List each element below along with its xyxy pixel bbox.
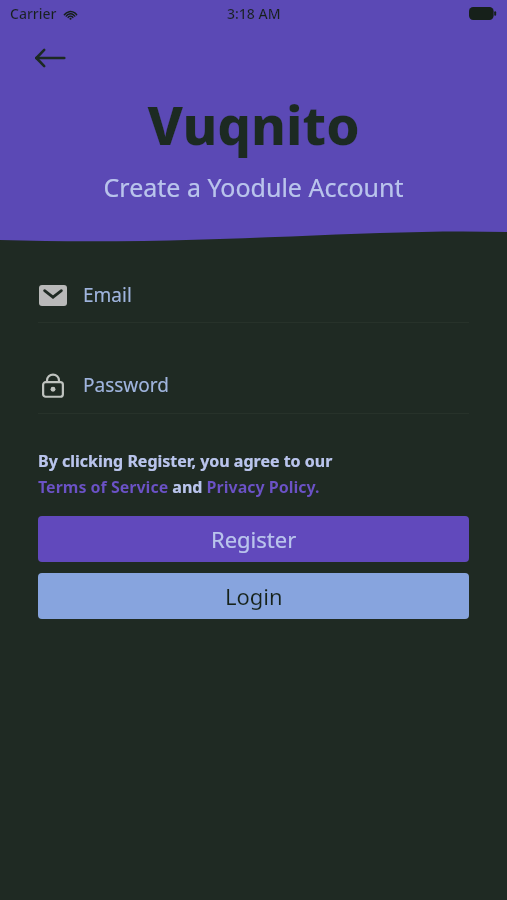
staticText: Login bbox=[225, 581, 283, 611]
staticText: Carrier bbox=[10, 4, 57, 23]
button[interactable]: Login bbox=[38, 573, 469, 619]
staticText: By clicking Register, you agree to our bbox=[38, 450, 333, 472]
button[interactable]: Back bbox=[24, 32, 76, 84]
button[interactable]: Password bbox=[38, 371, 469, 414]
staticText: Email bbox=[83, 282, 132, 308]
button[interactable]: Terms of Service and Privacy Policy. bbox=[38, 476, 320, 498]
button[interactable]: Register bbox=[38, 516, 469, 562]
button[interactable]: Email bbox=[38, 282, 469, 323]
staticText: Vuqnito bbox=[0, 88, 507, 160]
staticText: Create a Yoodule Account bbox=[0, 170, 507, 204]
staticText: Password bbox=[83, 372, 169, 398]
staticText: Register bbox=[211, 524, 297, 554]
staticText: 3:18 AM bbox=[227, 4, 281, 23]
